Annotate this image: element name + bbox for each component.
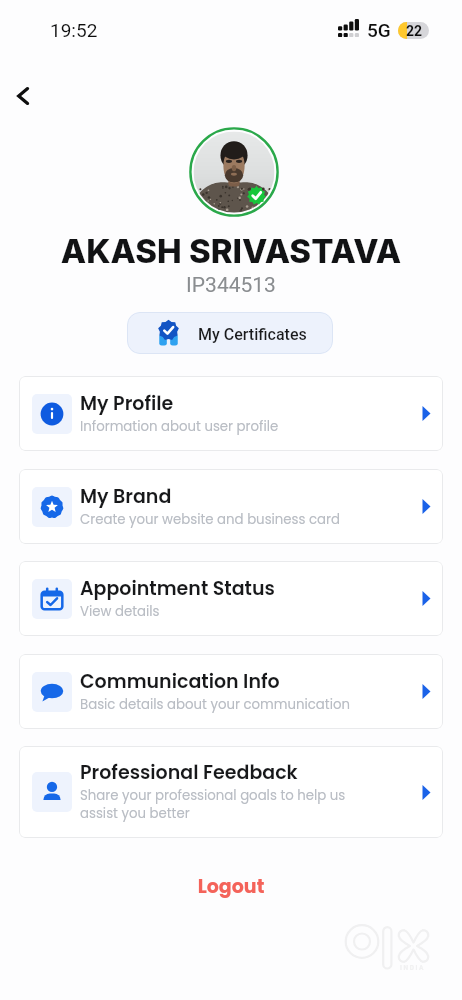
button[interactable]: Appointment Status (19, 561, 443, 636)
staticText: View details (80, 602, 160, 621)
staticText: 5G (367, 19, 391, 41)
button[interactable]: My Brand (19, 469, 443, 544)
staticText: Create your website and business card (80, 510, 341, 529)
staticText: Appointment Status (80, 575, 275, 602)
staticText: 19:52 (50, 19, 98, 41)
staticText: Basic details about your communication (80, 695, 350, 714)
staticText: My Profile (80, 390, 174, 417)
staticText: IP344513 (0, 273, 462, 298)
staticText: Information about user profile (80, 417, 279, 436)
staticText: Communication Info (80, 668, 280, 695)
button[interactable]: Communication Info (19, 654, 443, 729)
button[interactable]: Logout (0, 873, 462, 900)
staticText: My Brand (80, 483, 172, 510)
staticText: I N D I A (400, 964, 424, 972)
button[interactable]: Back (2, 75, 44, 117)
staticText: My Certificates (198, 325, 307, 344)
button[interactable]: My Certificates (127, 312, 333, 354)
staticText: 22 (406, 23, 423, 39)
staticText: Share your professional goals to help us… (80, 786, 346, 823)
staticText: Professional Feedback (80, 759, 298, 786)
button[interactable]: My Profile (19, 376, 443, 451)
staticText: AKASH SRIVASTAVA (0, 231, 462, 271)
button[interactable]: Professional Feedback (19, 746, 443, 838)
